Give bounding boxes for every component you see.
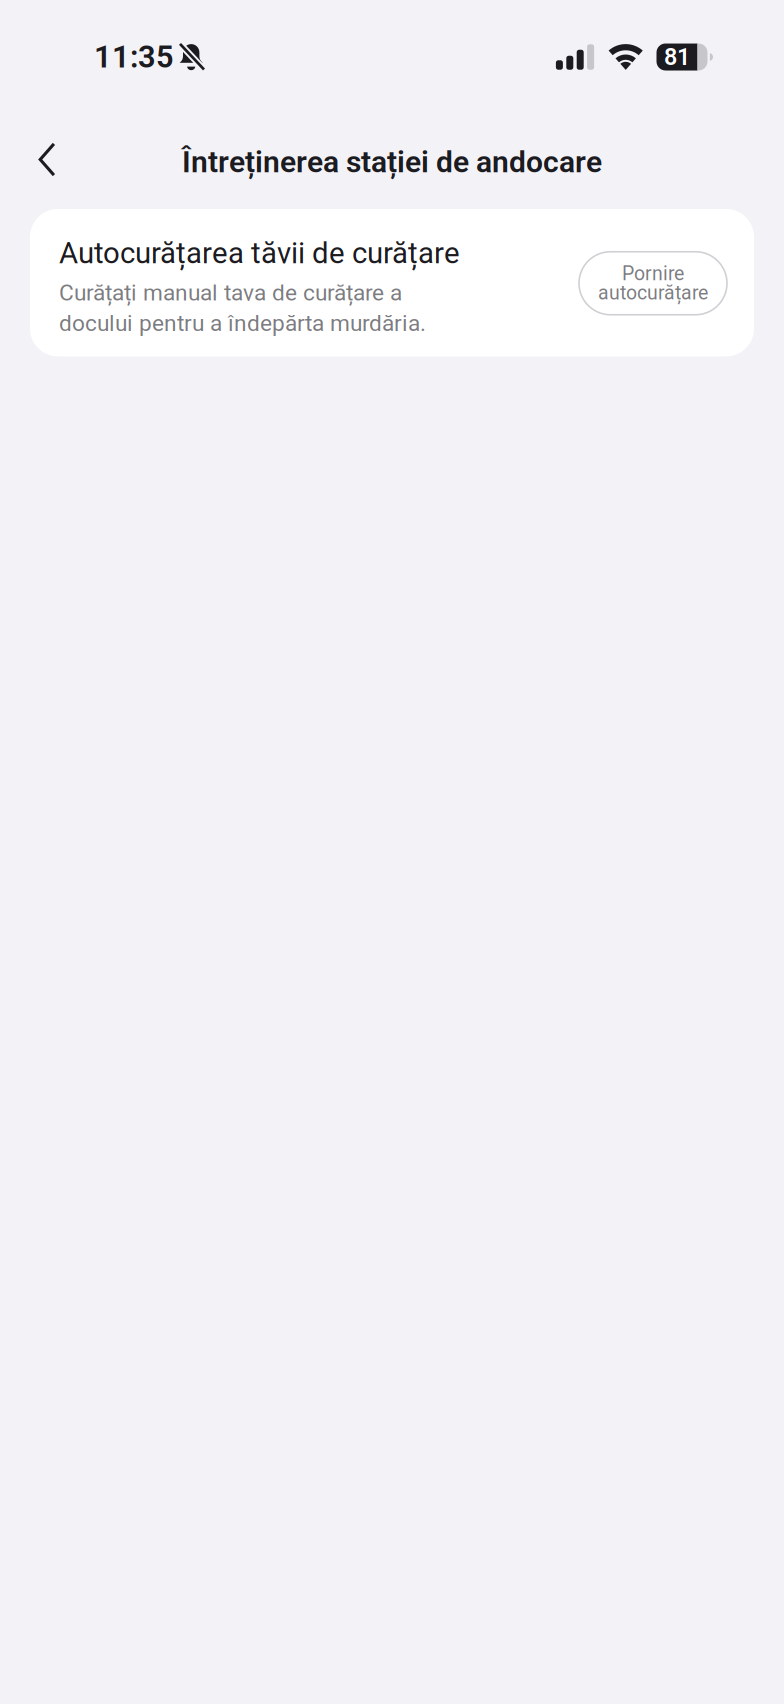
staticText: Autocurățarea tăvii de curățare	[59, 236, 460, 270]
staticText: Curățați manual tava de curățare a docul…	[59, 279, 426, 336]
staticText: Întreținerea stației de andocare	[182, 144, 602, 180]
button[interactable]: Pornire	[579, 255, 727, 318]
staticText: 11:35	[94, 39, 174, 75]
button[interactable]: Back	[17, 124, 77, 187]
staticText: Pornire	[622, 262, 684, 285]
staticText: 81	[664, 43, 690, 71]
staticText: autocurățare	[598, 282, 708, 304]
